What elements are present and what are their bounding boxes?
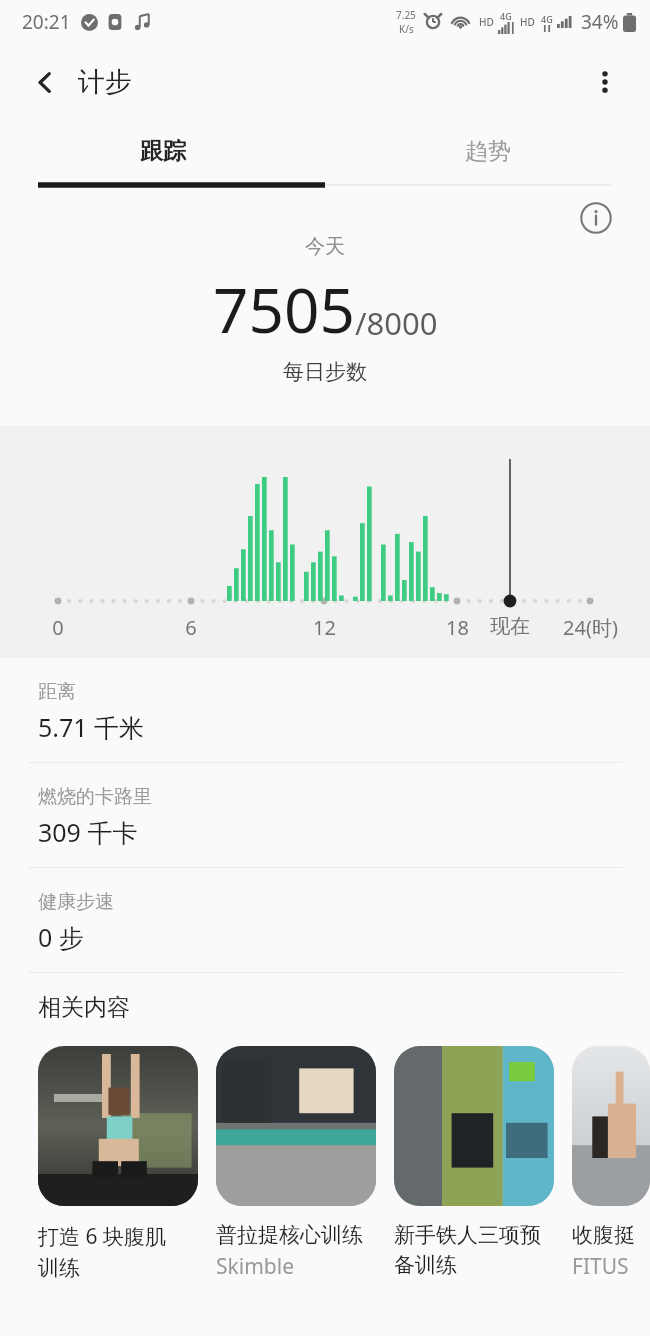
staticText: 4G bbox=[541, 13, 553, 25]
staticText: 健康步速 bbox=[38, 890, 114, 914]
staticText: 309 千卡 bbox=[38, 815, 138, 849]
staticText: 收腹挺胸 bbox=[572, 1222, 650, 1248]
button[interactable]: Back bbox=[20, 57, 70, 107]
staticText: 燃烧的卡路里 bbox=[38, 785, 152, 809]
staticText: 训练 bbox=[38, 1255, 80, 1281]
button[interactable]: 距离 bbox=[0, 658, 650, 763]
staticText: 每日步数 bbox=[283, 359, 367, 385]
button[interactable]: 跟踪 bbox=[0, 120, 325, 182]
button[interactable]: 趋势 bbox=[325, 120, 650, 182]
staticText: 0 bbox=[52, 614, 64, 641]
button[interactable]: 新手铁人三项预 bbox=[394, 1046, 554, 1278]
staticText: 现在 bbox=[490, 614, 530, 639]
staticText: 相关内容 bbox=[38, 993, 130, 1022]
button[interactable]: 打造 6 块腹肌 bbox=[38, 1046, 198, 1281]
button[interactable]: Information bbox=[574, 196, 618, 240]
staticText: 20:21 bbox=[22, 9, 71, 35]
staticText: 7.25 bbox=[396, 8, 416, 22]
staticText: 24(时) bbox=[563, 614, 618, 641]
staticText: 新手铁人三项预 bbox=[394, 1222, 541, 1248]
button[interactable]: More options bbox=[580, 57, 630, 107]
staticText: 0 步 bbox=[38, 920, 84, 954]
button[interactable]: 普拉提核心训练 bbox=[216, 1046, 376, 1281]
staticText: 普拉提核心训练 bbox=[216, 1222, 363, 1248]
staticText: 18 bbox=[446, 614, 469, 641]
button[interactable]: 燃烧的卡路里 bbox=[0, 763, 650, 868]
button[interactable]: 收腹挺胸 bbox=[572, 1046, 650, 1281]
staticText: 5.71 千米 bbox=[38, 710, 145, 744]
staticText: 34% bbox=[581, 9, 619, 35]
staticText: 趋势 bbox=[465, 137, 511, 166]
staticText: FITUS bbox=[572, 1252, 629, 1281]
staticText: HD bbox=[520, 15, 535, 29]
staticText: 4G bbox=[500, 10, 512, 22]
staticText: Skimble bbox=[216, 1252, 294, 1281]
staticText: 6 bbox=[185, 614, 197, 641]
staticText: 备训练 bbox=[394, 1252, 457, 1278]
staticText: 打造 6 块腹肌 bbox=[38, 1222, 166, 1251]
staticText: 7505 bbox=[213, 267, 355, 351]
staticText: HD bbox=[479, 15, 494, 29]
staticText: /8000 bbox=[355, 302, 438, 344]
staticText: 跟踪 bbox=[140, 137, 186, 166]
staticText: 计步 bbox=[78, 65, 132, 99]
staticText: 距离 bbox=[38, 680, 76, 704]
button[interactable]: 健康步速 bbox=[0, 868, 650, 973]
staticText: 12 bbox=[313, 614, 336, 641]
staticText: 今天 bbox=[305, 234, 345, 259]
staticText: K/s bbox=[399, 22, 414, 36]
